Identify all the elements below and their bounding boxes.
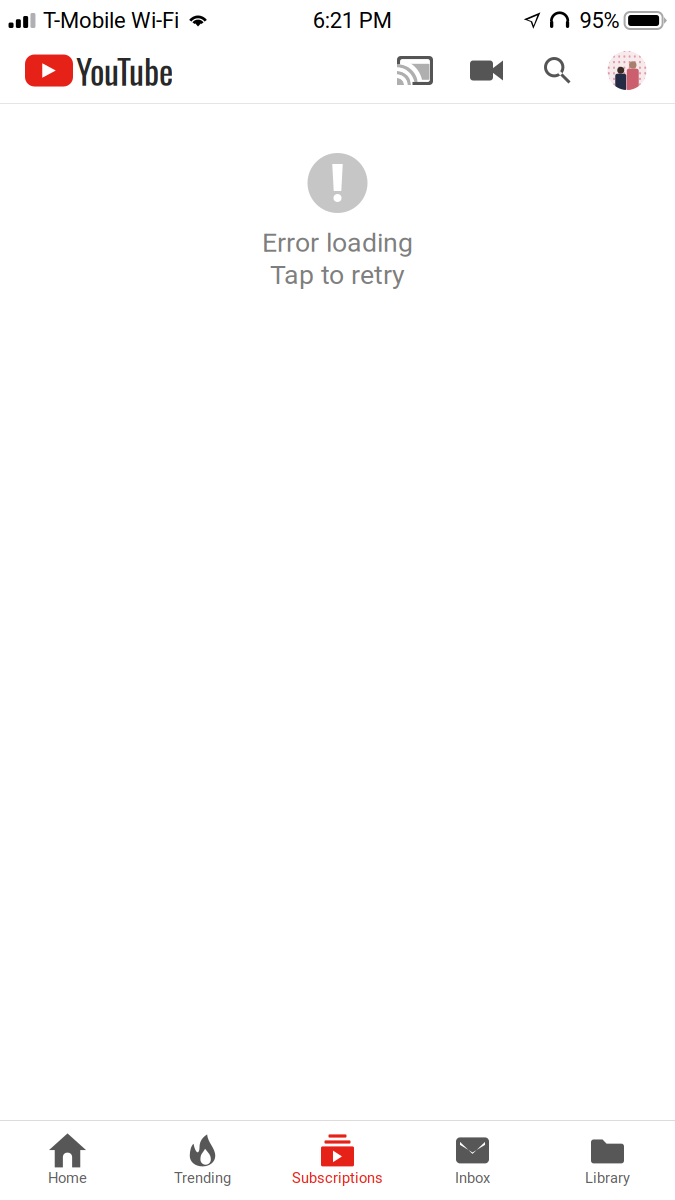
button[interactable]: Error loading	[0, 153, 675, 290]
staticText: T-Mobile Wi-Fi	[43, 8, 179, 33]
staticText: 6:21 PM	[313, 8, 392, 33]
button[interactable]: Trending	[135, 1122, 270, 1199]
button[interactable]: Search	[522, 41, 593, 99]
button[interactable]: Create a video	[451, 41, 522, 99]
staticText: 95%	[580, 8, 620, 33]
staticText: Library	[585, 1169, 630, 1187]
button[interactable]: Account	[593, 41, 661, 99]
button[interactable]: Home	[0, 1122, 135, 1199]
staticText: Inbox	[455, 1169, 490, 1187]
staticText: Home	[48, 1169, 87, 1187]
button[interactable]: YouTube	[25, 35, 187, 106]
staticText: Tap to retry	[270, 259, 405, 291]
staticText: Subscriptions	[292, 1169, 383, 1187]
button[interactable]: Cast	[379, 41, 451, 99]
button[interactable]: Subscriptions	[270, 1122, 405, 1199]
staticText: Error loading	[262, 227, 413, 258]
button[interactable]: Inbox	[405, 1122, 540, 1199]
button[interactable]: Library	[540, 1122, 675, 1199]
staticText: YouTube	[76, 45, 173, 96]
staticText: Trending	[174, 1169, 231, 1187]
